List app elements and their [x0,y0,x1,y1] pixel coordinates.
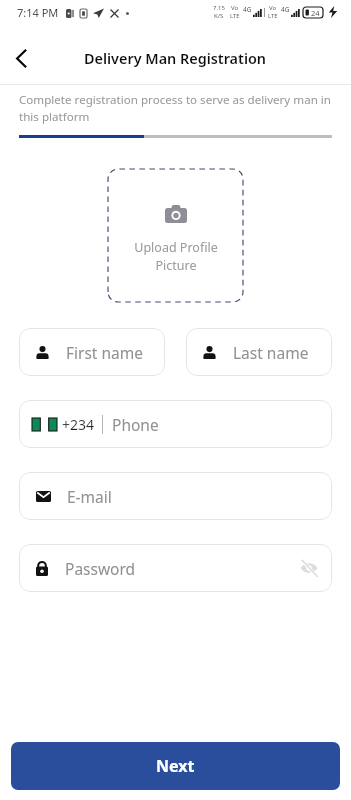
staticText: Complete registration process to serve a… [19,92,335,124]
staticText: Upload Profile Picture [134,239,218,274]
staticText: Vo [231,4,239,12]
button[interactable]: Password [19,544,332,592]
button[interactable]: First name [19,328,165,376]
staticText: Vo [269,4,277,12]
button[interactable]: Back [1,38,41,78]
button[interactable]: Next [11,742,340,790]
staticText: 7.15 [213,4,225,12]
staticText: E-mail [67,486,112,507]
staticText: 7:14 PM [17,5,59,20]
staticText: Delivery Man Registration [84,49,267,69]
staticText: 24 [311,8,320,18]
button[interactable]: Show password [296,555,322,581]
staticText: LTE [268,12,278,20]
button[interactable]: Last name [186,328,332,376]
staticText: Password [65,558,136,579]
staticText: 4G [281,5,290,14]
staticText: K/S [214,12,224,20]
staticText: First name [66,342,144,363]
button[interactable]: Upload profile picture [108,169,243,302]
staticText: LTE [230,12,240,20]
staticText: +234 [62,415,95,434]
button[interactable]: E-mail [19,472,332,520]
button[interactable]: +234 [19,400,332,448]
staticText: Phone [112,414,159,435]
staticText: Last name [233,342,309,363]
staticText: Next [156,755,195,777]
staticText: 4G [243,5,252,14]
